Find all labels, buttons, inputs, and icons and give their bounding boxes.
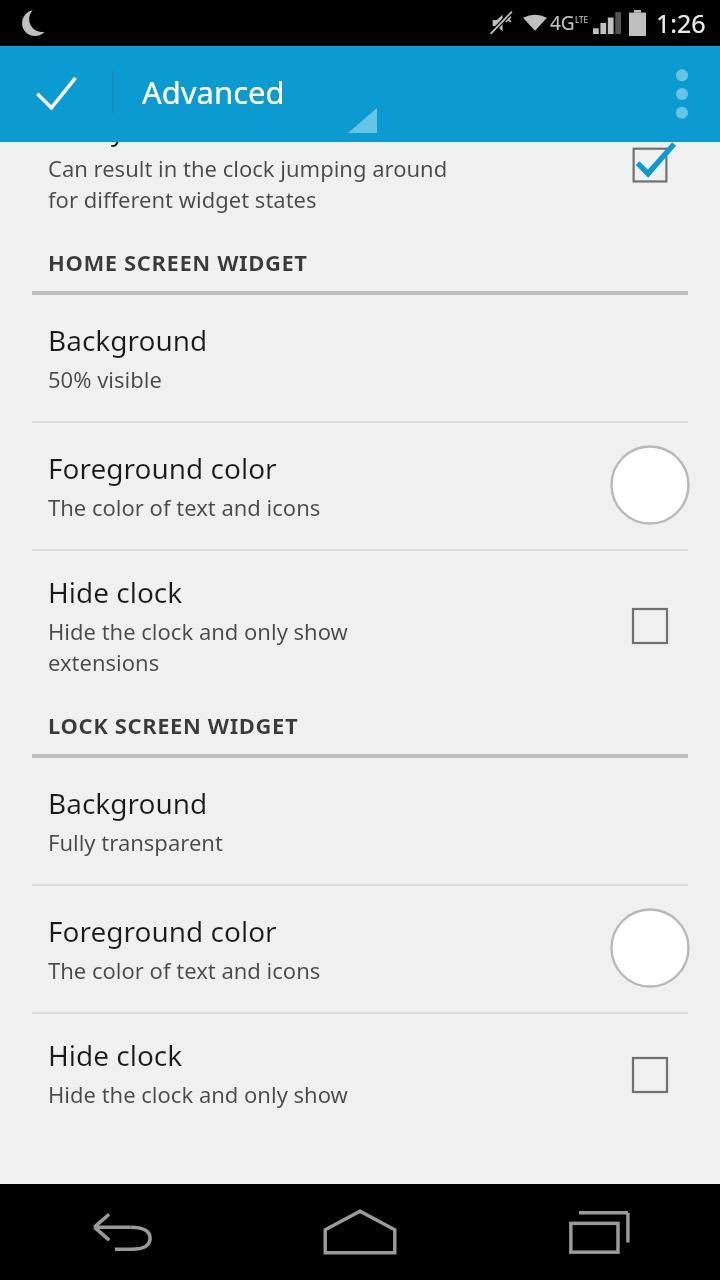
staticText: LOCK SCREEN WIDGET <box>48 710 299 740</box>
staticText: Fully transparent <box>48 827 223 857</box>
staticText: Hide clock <box>48 1036 183 1074</box>
button[interactable]: Back <box>0 1184 240 1280</box>
button[interactable]: Unchecked <box>622 598 678 654</box>
staticText: Background <box>48 784 208 822</box>
button[interactable]: Unchecked <box>622 1047 678 1103</box>
button[interactable]: Done <box>0 46 112 142</box>
button[interactable]: Hide clock <box>0 1014 720 1136</box>
button[interactable]: Always center <box>0 142 720 233</box>
button[interactable]: Home <box>240 1184 480 1280</box>
button[interactable]: Recent apps <box>480 1184 720 1280</box>
staticText: The color of text and icons <box>48 492 321 522</box>
staticText: Always center <box>48 142 230 148</box>
staticText: Can result in the clock jumping around f… <box>48 153 448 215</box>
staticText: Hide clock <box>48 573 183 611</box>
staticText: Hide the clock and only show extensions <box>48 616 348 678</box>
staticText: 1:26 <box>656 6 706 40</box>
staticText: 4G <box>550 10 575 36</box>
staticText: Hide the clock and only show extensions <box>48 1079 348 1114</box>
staticText: Background <box>48 321 208 359</box>
staticText: LTE <box>575 14 588 25</box>
staticText: Foreground color <box>48 912 277 950</box>
button[interactable]: Foreground color <box>0 886 720 1012</box>
staticText: HOME SCREEN WIDGET <box>48 247 308 277</box>
button[interactable]: Background <box>0 758 720 884</box>
button[interactable]: More options <box>644 46 720 142</box>
button[interactable]: Foreground color <box>0 423 720 549</box>
button[interactable]: Checked <box>622 142 678 191</box>
button[interactable]: Background <box>0 295 720 421</box>
staticText: Advanced <box>142 71 285 113</box>
button[interactable]: Pick color <box>610 908 690 988</box>
button[interactable]: Hide clock <box>0 551 720 696</box>
staticText: The color of text and icons <box>48 955 321 985</box>
staticText: 50% visible <box>48 364 162 394</box>
button[interactable]: Pick color <box>610 445 690 525</box>
staticText: Foreground color <box>48 449 277 487</box>
